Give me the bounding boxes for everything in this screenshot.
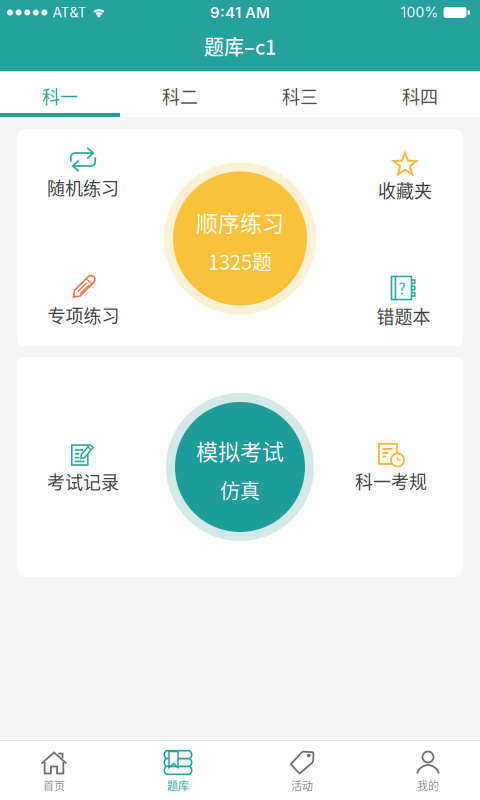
button[interactable]: 题库 <box>138 741 218 797</box>
button[interactable]: 科四 <box>360 75 480 117</box>
button[interactable]: 活动 <box>262 741 342 797</box>
staticText: 错题本 <box>376 303 430 329</box>
button[interactable]: 随机练习 <box>28 133 138 213</box>
staticText: AT&T <box>52 4 86 21</box>
staticText: 仿真 <box>220 475 260 504</box>
button[interactable]: 顺序练习 <box>164 162 316 314</box>
button[interactable]: 考试记录 <box>28 429 138 509</box>
staticText: 科四 <box>402 83 438 109</box>
staticText: 收藏夹 <box>378 177 432 203</box>
staticText: 模拟考试 <box>196 435 284 466</box>
staticText: 题库–c1 <box>204 31 276 60</box>
staticText: 科一考规 <box>355 468 427 494</box>
button[interactable]: ? <box>348 261 458 341</box>
staticText: 9:41 AM <box>210 3 270 21</box>
staticText: 科一 <box>42 83 78 109</box>
staticText: 题库 <box>167 777 189 793</box>
staticText: 顺序练习 <box>196 206 284 238</box>
staticText: 科三 <box>282 83 318 109</box>
button[interactable]: 我的 <box>388 741 468 797</box>
staticText: 考试记录 <box>47 468 119 495</box>
button[interactable]: 科三 <box>240 75 360 117</box>
button[interactable]: 科一 <box>0 75 120 117</box>
staticText: 活动 <box>291 777 313 793</box>
button[interactable]: 科一考规 <box>336 429 446 509</box>
staticText: 我的 <box>417 777 439 793</box>
button[interactable]: 首页 <box>14 741 94 797</box>
button[interactable]: 收藏夹 <box>350 137 460 217</box>
staticText: ? <box>398 277 405 299</box>
button[interactable]: 模拟考试 <box>166 393 314 541</box>
staticText: 专项练习 <box>47 302 119 328</box>
button[interactable]: 专项练习 <box>28 261 138 341</box>
staticText: 科二 <box>162 83 198 109</box>
staticText: 首页 <box>43 777 65 793</box>
staticText: 1325题 <box>208 246 272 275</box>
button[interactable]: 科二 <box>120 75 240 117</box>
staticText: 随机练习 <box>47 174 119 201</box>
staticText: 100% <box>400 4 438 21</box>
